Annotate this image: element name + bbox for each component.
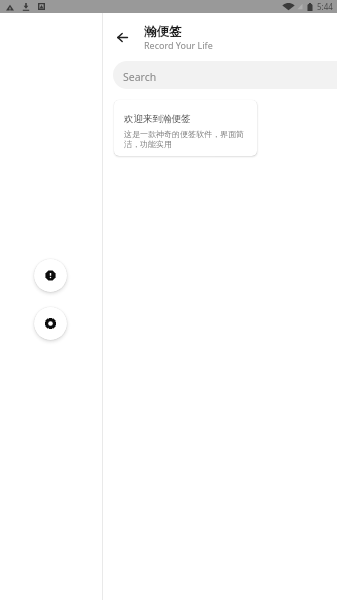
button[interactable]: About [34, 259, 67, 292]
button[interactable]: Search [113, 61, 337, 89]
staticText: 瀚便签 [144, 24, 182, 40]
staticText: Search [123, 70, 157, 84]
staticText: Record Your Life [144, 39, 213, 51]
staticText: 5:44 [317, 1, 333, 12]
button[interactable]: Back [109, 24, 135, 50]
staticText: 欢迎来到瀚便签 [124, 113, 191, 125]
button[interactable]: 欢迎来到瀚便签 [114, 100, 257, 156]
staticText: 这是一款神奇的便签软件，界面简洁，功能实用 [124, 129, 249, 150]
button[interactable]: Settings [34, 307, 67, 340]
